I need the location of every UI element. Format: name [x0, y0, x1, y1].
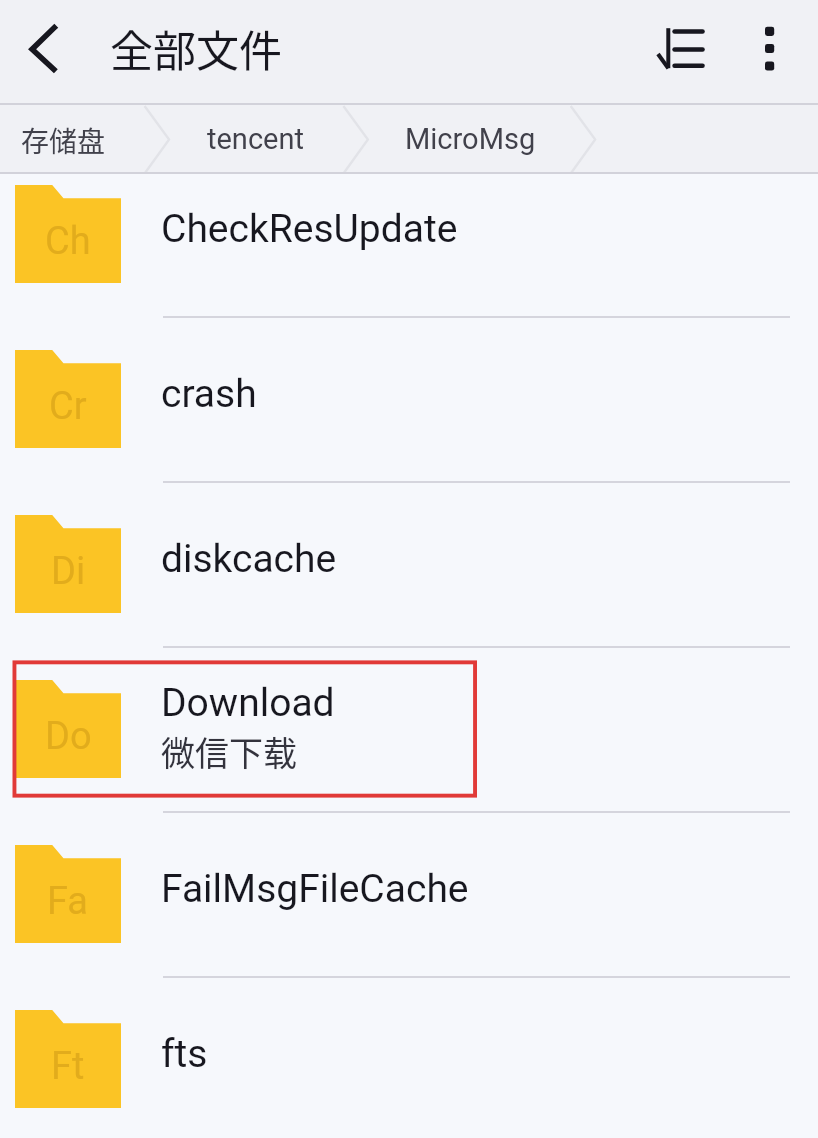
button[interactable]: Back	[5, 14, 81, 90]
staticText: tencent	[207, 122, 304, 156]
staticText: Fa	[47, 879, 89, 924]
staticText: CheckResUpdate	[161, 206, 458, 252]
staticText: diskcache	[161, 536, 337, 582]
staticText: FailMsgFileCache	[161, 866, 469, 912]
staticText: Do	[45, 714, 92, 759]
staticText: Cr	[49, 384, 87, 429]
button[interactable]: Di	[0, 483, 818, 648]
button[interactable]: Ch	[0, 153, 818, 318]
staticText: 存储盘	[21, 120, 106, 161]
staticText: Di	[51, 549, 86, 594]
button[interactable]: MicroMsg	[405, 105, 570, 174]
staticText: Ch	[45, 219, 91, 264]
button[interactable]: 存储盘	[21, 105, 145, 174]
staticText: 微信下载	[161, 727, 297, 776]
staticText: fts	[161, 1031, 208, 1077]
button[interactable]: More options	[732, 14, 808, 90]
button[interactable]: tencent	[207, 105, 343, 174]
staticText: 全部文件	[110, 17, 282, 79]
staticText: Ft	[51, 1044, 85, 1089]
button[interactable]: Sort	[634, 14, 706, 90]
button[interactable]: Do	[0, 648, 818, 813]
staticText: Download	[161, 680, 335, 726]
button[interactable]: Fa	[0, 813, 818, 978]
staticText: crash	[161, 371, 257, 417]
staticText: MicroMsg	[405, 122, 536, 156]
button[interactable]: Ft	[0, 978, 818, 1138]
button[interactable]: Cr	[0, 318, 818, 483]
